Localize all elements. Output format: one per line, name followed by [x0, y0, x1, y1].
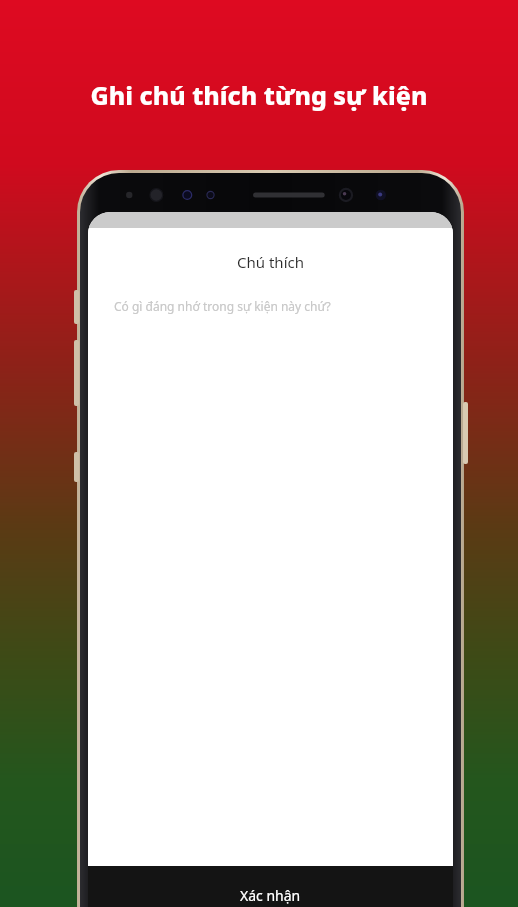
other: Bixby button	[74, 290, 79, 324]
other: Power	[463, 402, 468, 464]
other: Volume	[74, 340, 79, 406]
staticText: Xác nhận	[240, 886, 301, 905]
button[interactable]: Có gì đáng nhớ trong sự kiện này chứ?	[88, 298, 453, 338]
button[interactable]: Xác nhận	[88, 866, 453, 907]
staticText: Ghi chú thích từng sự kiện	[0, 78, 518, 112]
staticText: Chú thích	[88, 252, 453, 272]
staticText: Có gì đáng nhớ trong sự kiện này chứ?	[114, 298, 331, 314]
